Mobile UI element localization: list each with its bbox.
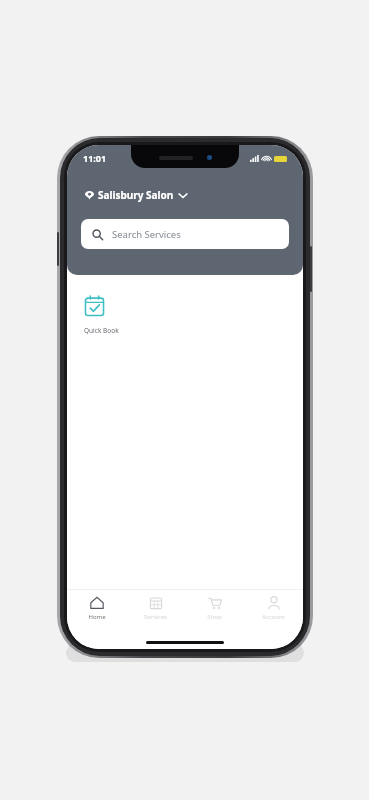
staticText: Search Services	[112, 228, 181, 241]
button[interactable]: Shop	[185, 592, 244, 632]
button[interactable]: Account	[244, 592, 303, 632]
staticText: Account	[262, 613, 285, 621]
button[interactable]: Quick Book	[81, 293, 122, 338]
button[interactable]: Search Services	[81, 219, 289, 249]
staticText: 11:01	[83, 152, 107, 164]
button[interactable]: Home	[67, 592, 126, 632]
staticText: Shop	[207, 613, 222, 621]
staticText: Quick Book	[84, 326, 119, 335]
button[interactable]: Services	[126, 592, 185, 632]
staticText: Salisbury Salon	[98, 188, 174, 202]
button[interactable]: Salisbury Salon	[81, 185, 191, 205]
staticText: Home	[88, 613, 106, 621]
staticText: Services	[144, 613, 167, 621]
